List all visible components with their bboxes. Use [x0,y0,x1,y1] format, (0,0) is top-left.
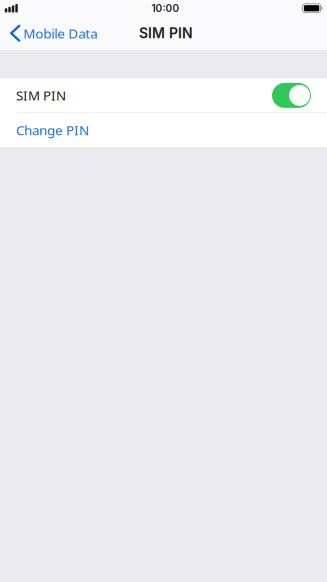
staticText: 10:00 [151,2,179,14]
staticText: Mobile Data [23,24,97,42]
button[interactable]: SIM PIN [0,79,327,112]
navigationBar: SIM PIN [0,16,327,50]
staticText: SIM PIN [139,25,193,42]
staticText: SIM PIN [16,86,66,104]
staticText: Change PIN [16,121,89,139]
button[interactable]: Change PIN [0,113,327,147]
toggle[interactable]: 1 [272,83,311,108]
button[interactable]: Mobile Data [0,16,105,50]
